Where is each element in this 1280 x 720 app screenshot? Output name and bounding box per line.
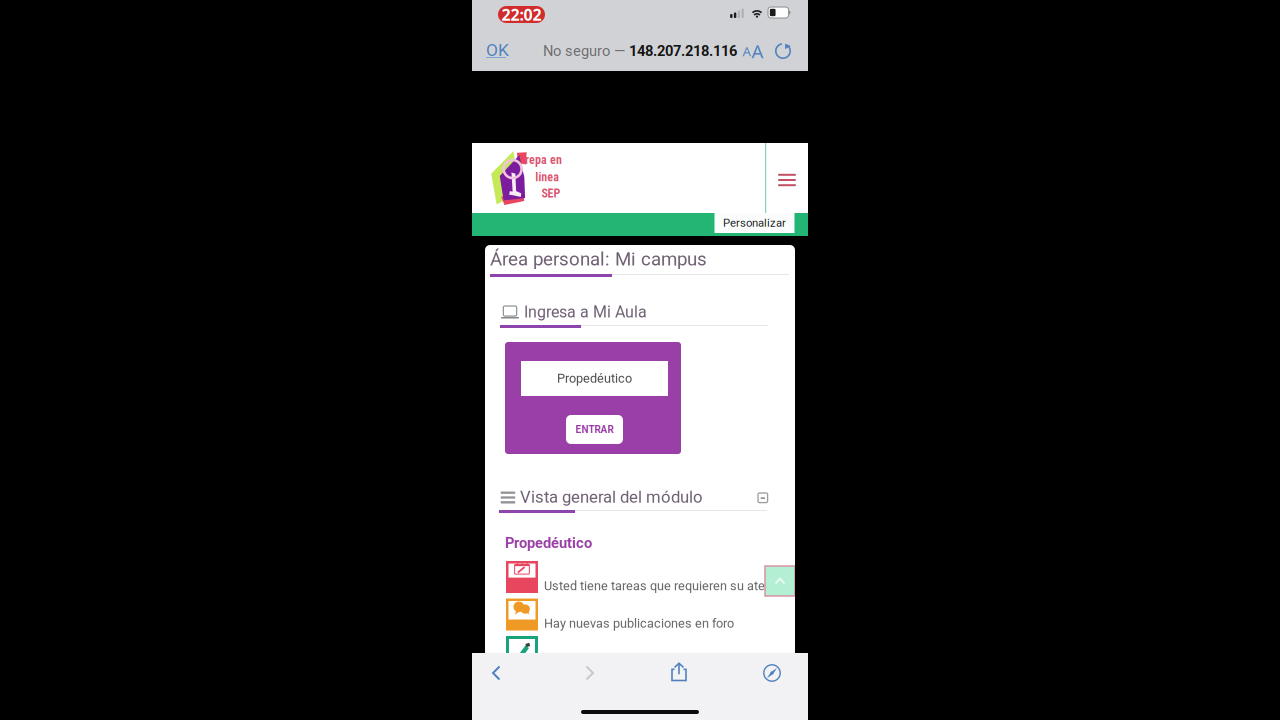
- staticText: Propedéutico: [557, 371, 632, 386]
- staticText: Área personal: Mi campus: [490, 248, 707, 270]
- staticText: línea: [535, 170, 559, 184]
- staticText: Usted tiene tareas que requieren su ate: [544, 579, 765, 593]
- staticText: A: [751, 39, 763, 63]
- button[interactable]: Forward: [567, 653, 613, 693]
- button[interactable]: ENTRAR: [566, 415, 623, 444]
- button[interactable]: Text size: [740, 39, 766, 63]
- staticText: SEP: [541, 186, 560, 200]
- staticText: repa en: [525, 153, 562, 167]
- staticText: ENTRAR: [575, 424, 613, 435]
- staticText: 22:02: [501, 4, 541, 25]
- staticText: Vista general del módulo: [520, 487, 703, 507]
- staticText: Personalizar: [723, 216, 786, 230]
- staticText: 148.207.218.116: [629, 42, 737, 60]
- button[interactable]: Tabs: [749, 653, 795, 693]
- staticText: Ingresa a Mi Aula: [524, 303, 647, 321]
- staticText: A: [742, 42, 751, 60]
- button[interactable]: OK: [486, 36, 516, 64]
- button[interactable]: Menu: [767, 145, 807, 215]
- button[interactable]: Scroll to top: [765, 566, 795, 596]
- staticText: No seguro —: [543, 42, 629, 60]
- staticText: Hay nuevas publicaciones en foro: [544, 616, 734, 631]
- button[interactable]: Share: [656, 652, 702, 692]
- staticText: Propedéutico: [505, 534, 592, 552]
- button[interactable]: Back: [473, 653, 519, 693]
- button[interactable]: Personalizar: [714, 213, 794, 233]
- button[interactable]: Reload: [774, 41, 792, 61]
- staticText: OK: [486, 40, 509, 60]
